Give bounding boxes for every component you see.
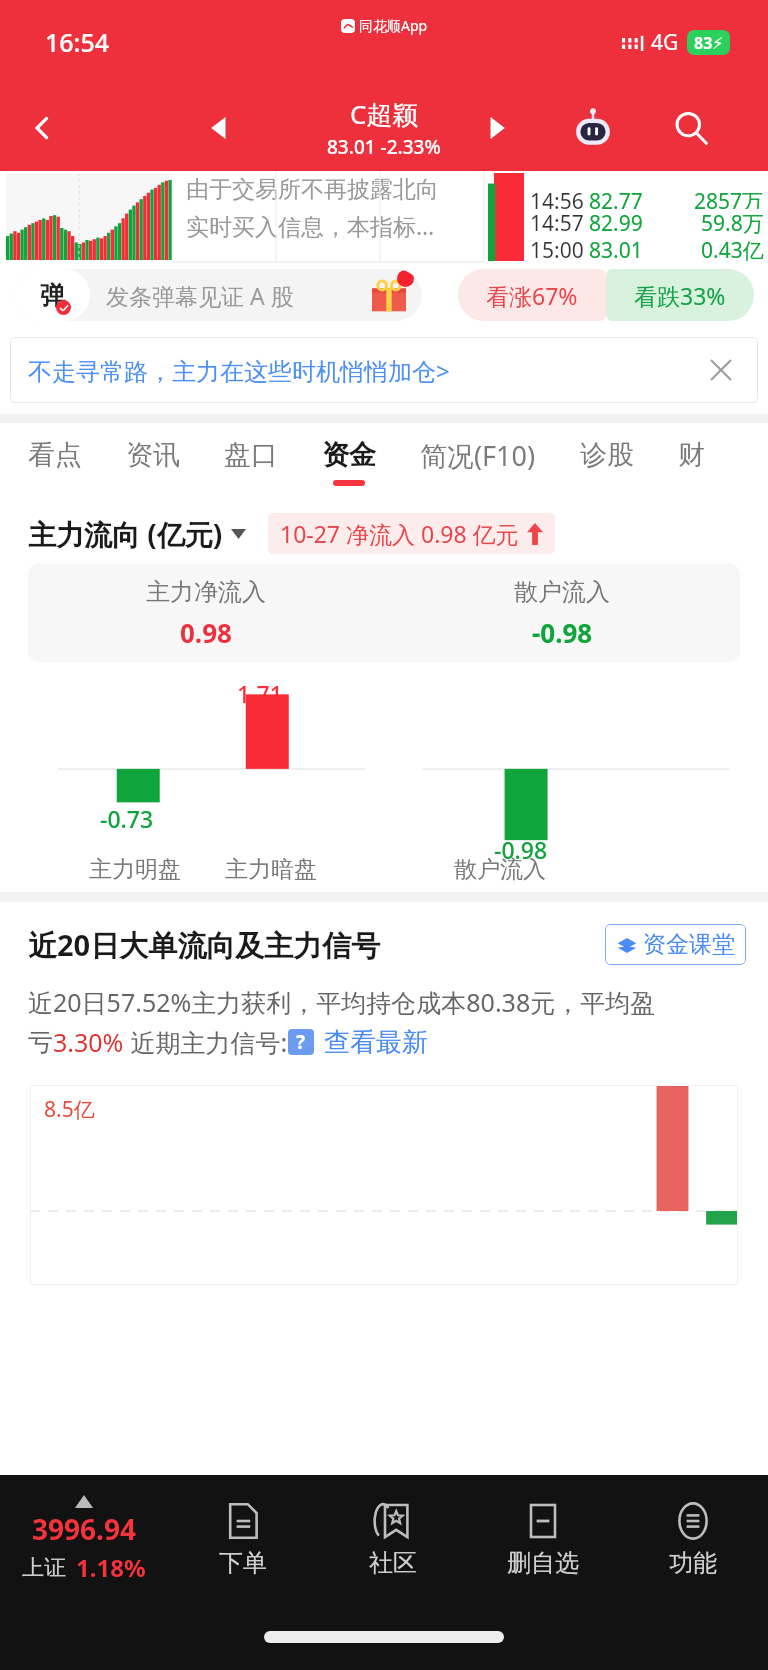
button[interactable]: 资讯 xyxy=(104,438,202,486)
button[interactable]: 3996.94 xyxy=(0,1475,168,1603)
button[interactable]: 盘口 xyxy=(202,438,300,486)
button[interactable]: 弹 xyxy=(14,269,422,321)
staticText: 同花顺App xyxy=(359,16,428,35)
button[interactable]: 看点 xyxy=(28,438,82,486)
button[interactable]: 不走寻常路，主力在这些时机悄悄加仓> xyxy=(10,337,758,403)
button[interactable]: 主力流向 (亿元) xyxy=(28,515,246,553)
staticText: 资金 xyxy=(322,438,376,472)
staticText: -0.73 xyxy=(100,803,154,834)
staticText: 主力净流入 xyxy=(146,577,266,607)
button[interactable]: 诊股 xyxy=(558,438,656,486)
staticText: 功能 xyxy=(669,1548,717,1578)
staticText: 散户流入 xyxy=(454,855,546,884)
staticText: 0.43亿 xyxy=(701,236,764,263)
staticText: 14:56 xyxy=(530,187,584,209)
button[interactable]: 10-27 净流入 0.98 亿元 xyxy=(280,518,543,549)
staticText: 资金课堂 xyxy=(643,930,735,959)
staticText: 2857万 xyxy=(694,187,764,209)
staticText: 弹 xyxy=(40,280,65,311)
staticText: 散户流入 xyxy=(514,577,610,607)
staticText: 简况(F10) xyxy=(420,437,536,474)
button[interactable]: 资金 xyxy=(300,438,398,486)
staticText: 1.18% xyxy=(76,1551,146,1584)
button[interactable]: 简况(F10) xyxy=(398,437,558,488)
staticText: 盘口 xyxy=(224,438,278,472)
staticText: 资讯 xyxy=(126,438,180,472)
staticText: 主力暗盘 xyxy=(225,855,317,884)
button[interactable]: Search xyxy=(666,103,716,153)
staticText: 实时买入信息，本指标… xyxy=(186,210,435,241)
staticText: 看涨67% xyxy=(486,280,578,311)
button[interactable]: 查看最新 xyxy=(324,1026,428,1059)
button[interactable]: 看涨67% xyxy=(458,269,606,321)
button[interactable]: Next stock xyxy=(474,106,518,150)
button[interactable]: 删自选 xyxy=(468,1475,618,1603)
button[interactable]: 功能 xyxy=(618,1475,768,1603)
button[interactable]: AI assistant xyxy=(568,103,618,153)
button[interactable]: Help xyxy=(288,1029,314,1055)
staticText: 59.8万 xyxy=(701,209,764,236)
staticText: 诊股 xyxy=(580,438,634,472)
button[interactable]: Back xyxy=(20,105,66,151)
staticText: 近期主力信号: xyxy=(124,1025,288,1059)
button[interactable]: 资金课堂 xyxy=(616,930,735,959)
staticText: 83.01 -2.33% xyxy=(327,134,441,160)
button[interactable]: 看跌33% xyxy=(606,269,754,321)
staticText: 看跌33% xyxy=(634,280,726,311)
staticText: 亏 xyxy=(28,1027,53,1058)
staticText: 近20日57.52%主力获利，平均持仓成本80.38元，平均盈 xyxy=(28,985,656,1019)
staticText: 82.99 xyxy=(589,209,643,236)
staticText: 看点 xyxy=(28,438,82,472)
staticText: -0.98 xyxy=(494,834,548,865)
button[interactable]: 下单 xyxy=(168,1475,318,1603)
staticText: C超颖 xyxy=(350,96,419,132)
button[interactable]: C超颖 xyxy=(327,96,441,160)
staticText: 下单 xyxy=(219,1548,267,1578)
staticText: 14:57 xyxy=(530,209,584,236)
staticText: ? xyxy=(296,1029,306,1055)
staticText: 15:00 xyxy=(530,236,584,263)
button[interactable]: 社区 xyxy=(318,1475,468,1603)
staticText: 3.30% xyxy=(53,1025,124,1059)
staticText: 4G xyxy=(651,28,679,57)
button[interactable]: 财 xyxy=(656,438,727,486)
staticText: 0.98 xyxy=(180,615,232,650)
staticText: 主力流向 (亿元) xyxy=(28,515,223,553)
staticText: 1.71 xyxy=(237,678,283,709)
staticText: 删自选 xyxy=(507,1548,579,1578)
staticText: 82.77 xyxy=(589,187,643,209)
staticText: 83.01 xyxy=(589,236,643,263)
staticText: 83⚡ xyxy=(694,32,724,54)
button[interactable]: Previous stock xyxy=(198,106,242,150)
staticText: 3996.94 xyxy=(32,1510,136,1548)
staticText: 10-27 净流入 0.98 亿元 xyxy=(280,518,519,549)
staticText: 8.5亿 xyxy=(44,1095,95,1124)
staticText: 上证 xyxy=(22,1554,66,1582)
staticText: 财 xyxy=(678,438,705,472)
staticText: 近20日大单流向及主力信号 xyxy=(28,925,381,965)
staticText: 不走寻常路，主力在这些时机悄悄加仓> xyxy=(28,354,450,387)
button[interactable]: Close banner xyxy=(706,355,736,385)
staticText: 发条弹幕见证 A 股 xyxy=(106,280,294,311)
staticText: -0.98 xyxy=(532,615,593,650)
staticText: 社区 xyxy=(369,1548,417,1578)
staticText: 主力明盘 xyxy=(89,855,181,884)
staticText: 由于交易所不再披露北向 xyxy=(186,175,439,204)
staticText: 16:54 xyxy=(45,25,110,59)
